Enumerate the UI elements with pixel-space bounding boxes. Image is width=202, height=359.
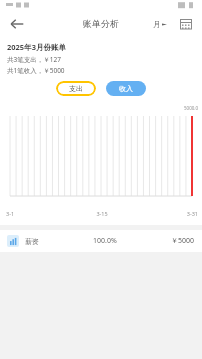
button[interactable]: Calendar: [176, 14, 196, 34]
staticText: 5000.0: [184, 105, 199, 111]
staticText: 2025年3月份账单: [7, 42, 66, 52]
staticText: 支出: [69, 84, 83, 93]
staticText: 共1笔收入，￥5000: [7, 66, 65, 75]
staticText: 3-15: [70, 210, 134, 217]
staticText: 共3笔支出，￥127: [7, 55, 61, 64]
staticText: 100.0%: [93, 236, 117, 246]
staticText: 3-31: [134, 210, 198, 217]
staticText: 账单分析: [83, 18, 119, 29]
staticText: 收入: [119, 84, 133, 93]
button[interactable]: 支出: [56, 81, 96, 96]
button[interactable]: 薪资: [0, 230, 202, 252]
staticText: 月: [153, 20, 161, 29]
button[interactable]: 月: [151, 18, 169, 31]
button[interactable]: Back: [6, 13, 28, 35]
button[interactable]: 收入: [106, 81, 146, 96]
staticText: 薪资: [25, 237, 39, 246]
staticText: 3-1: [6, 210, 70, 217]
staticText: ￥5000: [171, 236, 195, 246]
